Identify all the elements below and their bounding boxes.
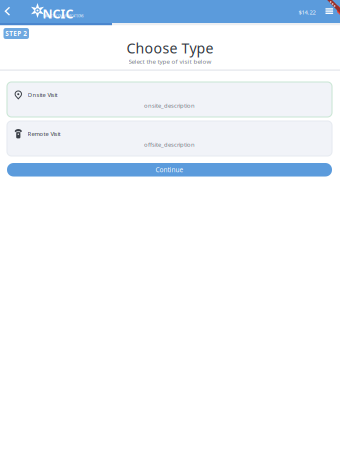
staticText: INMATE COMMUNICATIONS (43, 14, 84, 18)
button[interactable]: Menu (322, 0, 337, 22)
staticText: $14.22 (298, 8, 315, 16)
staticText: STEP 2 (5, 29, 27, 38)
staticText: offsite_description (144, 140, 195, 148)
staticText: Continue (155, 165, 183, 174)
staticText: Choose Type (126, 38, 213, 58)
staticText: Remote Visit (28, 130, 61, 138)
button[interactable]: Onsite Visit (7, 82, 332, 117)
staticText: Onsite Visit (28, 91, 58, 99)
staticText: onsite_description (144, 101, 195, 109)
staticText: NCIC (42, 5, 73, 22)
staticText: Select the type of visit below (128, 57, 211, 66)
button[interactable]: Remote Visit (7, 121, 332, 156)
button[interactable]: Back (0, 0, 15, 23)
button[interactable]: Continue (7, 163, 332, 176)
